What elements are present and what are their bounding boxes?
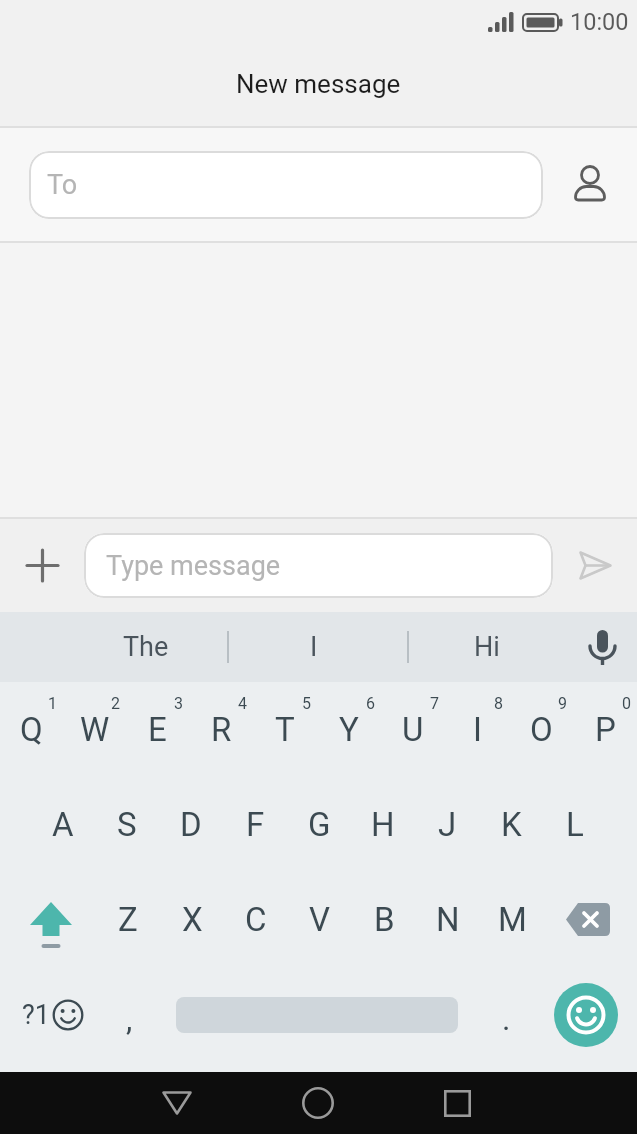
button[interactable]: I [254,612,374,682]
button[interactable]: I [445,682,509,777]
button[interactable]: W [63,682,126,777]
button[interactable]: Type message [84,533,553,598]
button[interactable] [553,519,637,612]
staticText: 4 [238,694,247,713]
button[interactable]: O [509,682,573,777]
button[interactable]: Hi [427,612,547,682]
button[interactable]: P [573,682,637,777]
button[interactable]: U [381,682,445,777]
staticText: 2 [111,694,120,713]
staticText: A [52,805,74,844]
button[interactable] [0,872,96,967]
button[interactable] [0,519,84,612]
staticText: J [438,805,457,844]
button[interactable]: D [159,777,223,872]
staticText: Y [339,710,359,749]
button[interactable]: E [126,682,189,777]
staticText: T [275,710,295,749]
staticText: ?1 [22,999,50,1031]
staticText: R [211,710,232,749]
staticText: M [498,900,527,939]
staticText: 0 [622,694,631,713]
staticText: G [308,805,331,844]
button[interactable]: J [415,777,479,872]
staticText: P [595,710,616,749]
staticText: 9 [558,694,567,713]
button[interactable]: L [543,777,607,872]
staticText: V [309,900,331,939]
button[interactable]: ?1 [0,967,96,1062]
staticText: F [246,805,265,844]
staticText: D [180,805,202,844]
button[interactable]: X [160,872,224,967]
button[interactable]: G [287,777,351,872]
staticText: Q [20,710,43,749]
button[interactable] [147,1073,207,1133]
staticText: 8 [494,694,503,713]
button[interactable] [554,983,618,1047]
staticText: 7 [430,694,439,713]
staticText: I [473,710,482,749]
button[interactable]: , [96,967,163,1062]
button[interactable]: F [223,777,287,872]
staticText: C [245,900,267,939]
staticText: U [402,710,424,749]
staticText: The [123,631,169,663]
staticText: X [182,900,203,939]
button[interactable]: K [479,777,543,872]
button[interactable]: Q [0,682,63,777]
button[interactable]: S [95,777,159,872]
button[interactable]: V [288,872,352,967]
button[interactable]: . [458,967,554,1062]
staticText: L [566,805,584,844]
staticText: S [117,805,137,844]
staticText: 10:00 [570,8,629,36]
staticText: . [502,1000,511,1038]
button[interactable]: M [480,872,544,967]
button[interactable] [576,612,628,682]
button[interactable]: N [416,872,480,967]
button[interactable] [543,128,637,241]
staticText: Z [118,900,138,939]
staticText: W [80,710,110,749]
staticText: 5 [302,694,311,713]
staticText: O [530,710,553,749]
button[interactable]: H [351,777,415,872]
button[interactable] [288,1073,348,1133]
staticText: K [501,805,522,844]
staticText: H [371,805,395,844]
button[interactable]: To [29,151,543,219]
staticText: Type message [106,550,281,582]
staticText: I [310,631,318,663]
staticText: E [148,710,167,749]
staticText: Hi [474,631,500,663]
staticText: New message [236,69,401,99]
button[interactable] [544,872,637,967]
button[interactable] [427,1073,487,1133]
staticText: N [436,900,460,939]
staticText: 3 [174,694,183,713]
button[interactable]: C [224,872,288,967]
button[interactable]: R [189,682,253,777]
button[interactable]: Y [317,682,381,777]
staticText: B [374,900,395,939]
staticText: To [47,169,78,201]
button[interactable]: A [31,777,95,872]
staticText: 6 [366,694,375,713]
button[interactable]: Z [96,872,160,967]
staticText: , [126,1000,133,1038]
button[interactable]: T [253,682,317,777]
staticText: 1 [48,694,57,713]
button[interactable]: B [352,872,416,967]
button[interactable]: The [86,612,206,682]
